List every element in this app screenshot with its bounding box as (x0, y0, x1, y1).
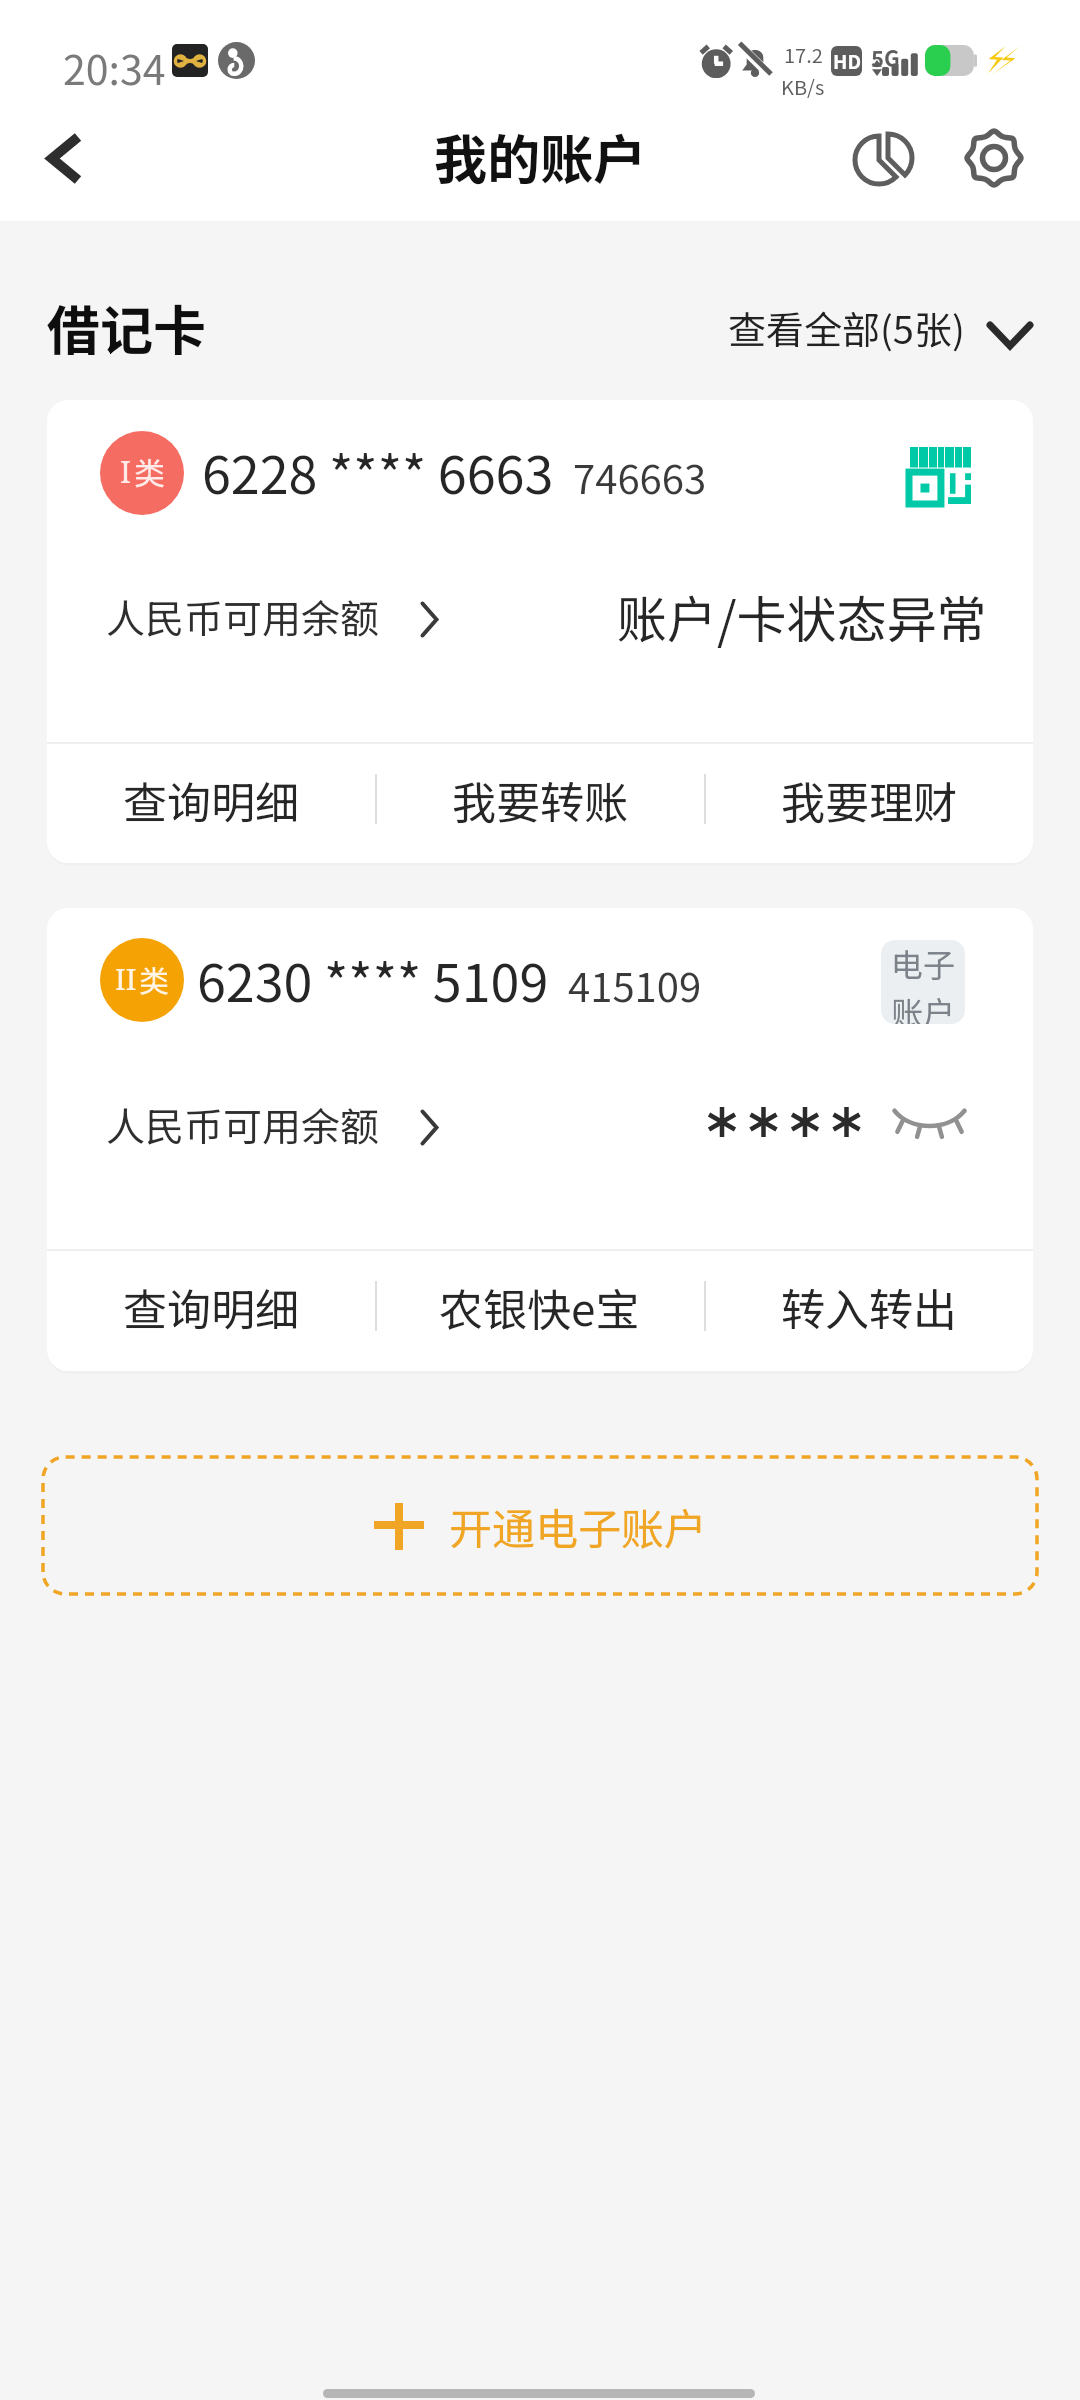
staticText: 6230 **** 5109 (197, 942, 549, 1017)
staticText: I (120, 451, 132, 492)
staticText: 我要理财 (781, 768, 957, 832)
staticText: 借记卡 (47, 289, 206, 366)
button[interactable]: 开通电子账户 (43, 1457, 1037, 1594)
button[interactable]: 查看全部(5张) (728, 300, 1033, 355)
staticText: II (115, 959, 137, 998)
staticText: 人民币可用余额 (106, 1096, 380, 1152)
button[interactable]: Show balance (893, 1107, 966, 1138)
button[interactable]: 查询明细 (47, 744, 375, 863)
staticText: 人民币可用余额 (106, 588, 380, 644)
staticText: 6228 **** 6663 (202, 434, 554, 509)
staticText: 电子 (891, 940, 956, 986)
staticText: 我的账户 (434, 118, 646, 195)
staticText: 类 (134, 449, 165, 494)
button[interactable]: 人民币可用余额 (106, 588, 438, 644)
staticText: 查询明细 (123, 1275, 299, 1339)
button[interactable]: 农银快e宝 (375, 1251, 704, 1371)
button[interactable]: 人民币可用余额 (106, 1096, 438, 1152)
button[interactable]: 查询明细 (47, 1251, 375, 1371)
staticText: 账户 (891, 988, 956, 1024)
staticText: 746663 (573, 448, 707, 506)
button[interactable]: Statistics (840, 118, 924, 202)
staticText: 5G (871, 41, 900, 73)
staticText: 查看全部(5张) (728, 300, 965, 355)
button[interactable]: Settings (952, 116, 1036, 200)
staticText: 账户/卡状态异常 (617, 580, 987, 652)
staticText: 类 (139, 957, 169, 1000)
staticText: 我要转账 (452, 768, 628, 832)
staticText: 开通电子账户 (449, 1495, 707, 1557)
staticText: KB/s (781, 72, 825, 101)
button[interactable]: 我要理财 (704, 744, 1033, 863)
staticText: 415109 (568, 956, 702, 1014)
button[interactable]: Scan QR code (903, 438, 977, 512)
button[interactable]: 我要转账 (375, 744, 704, 863)
staticText: HD (833, 47, 861, 75)
button[interactable]: 转入转出 (704, 1251, 1033, 1371)
staticText: 转入转出 (781, 1275, 957, 1339)
staticText: 20:34 (63, 37, 166, 96)
staticText: 17.2 (784, 40, 823, 69)
button[interactable]: Back (16, 116, 100, 200)
staticText: 农银快e宝 (439, 1275, 640, 1339)
staticText: 查询明细 (123, 768, 299, 832)
